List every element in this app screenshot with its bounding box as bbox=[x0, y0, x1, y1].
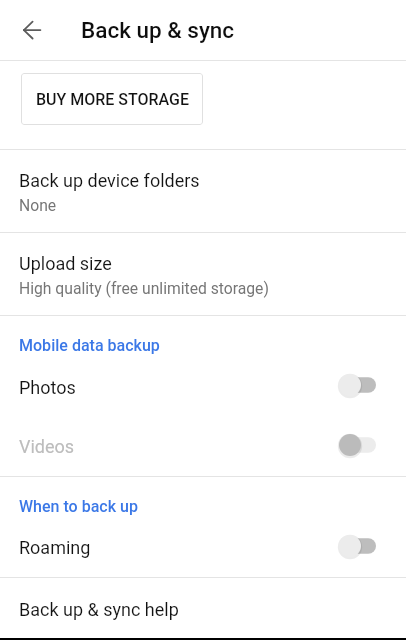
button[interactable]: Roaming bbox=[0, 518, 406, 577]
staticText: Photos bbox=[19, 377, 76, 398]
staticText: When to back up bbox=[19, 497, 138, 516]
staticText: Mobile data backup bbox=[19, 336, 160, 355]
staticText: Roaming bbox=[19, 537, 91, 558]
staticText: High quality (free unlimited storage) bbox=[19, 279, 269, 297]
staticText: Upload size bbox=[19, 253, 112, 274]
staticText: BUY MORE STORAGE bbox=[36, 90, 189, 109]
button[interactable]: Photos bbox=[0, 357, 406, 417]
button[interactable]: Navigate up bbox=[12, 8, 56, 52]
button[interactable]: Upload size bbox=[0, 233, 406, 315]
staticText: Back up device folders bbox=[19, 170, 200, 191]
staticText: Back up & sync help bbox=[19, 599, 179, 620]
staticText: Videos bbox=[19, 436, 75, 457]
button[interactable]: Back up & sync help bbox=[0, 578, 406, 640]
button[interactable]: BUY MORE STORAGE bbox=[21, 73, 203, 125]
staticText: Back up & sync bbox=[81, 17, 235, 43]
button[interactable]: Back up device folders bbox=[0, 150, 406, 232]
button[interactable]: Videos bbox=[0, 417, 406, 476]
staticText: None bbox=[19, 196, 57, 214]
